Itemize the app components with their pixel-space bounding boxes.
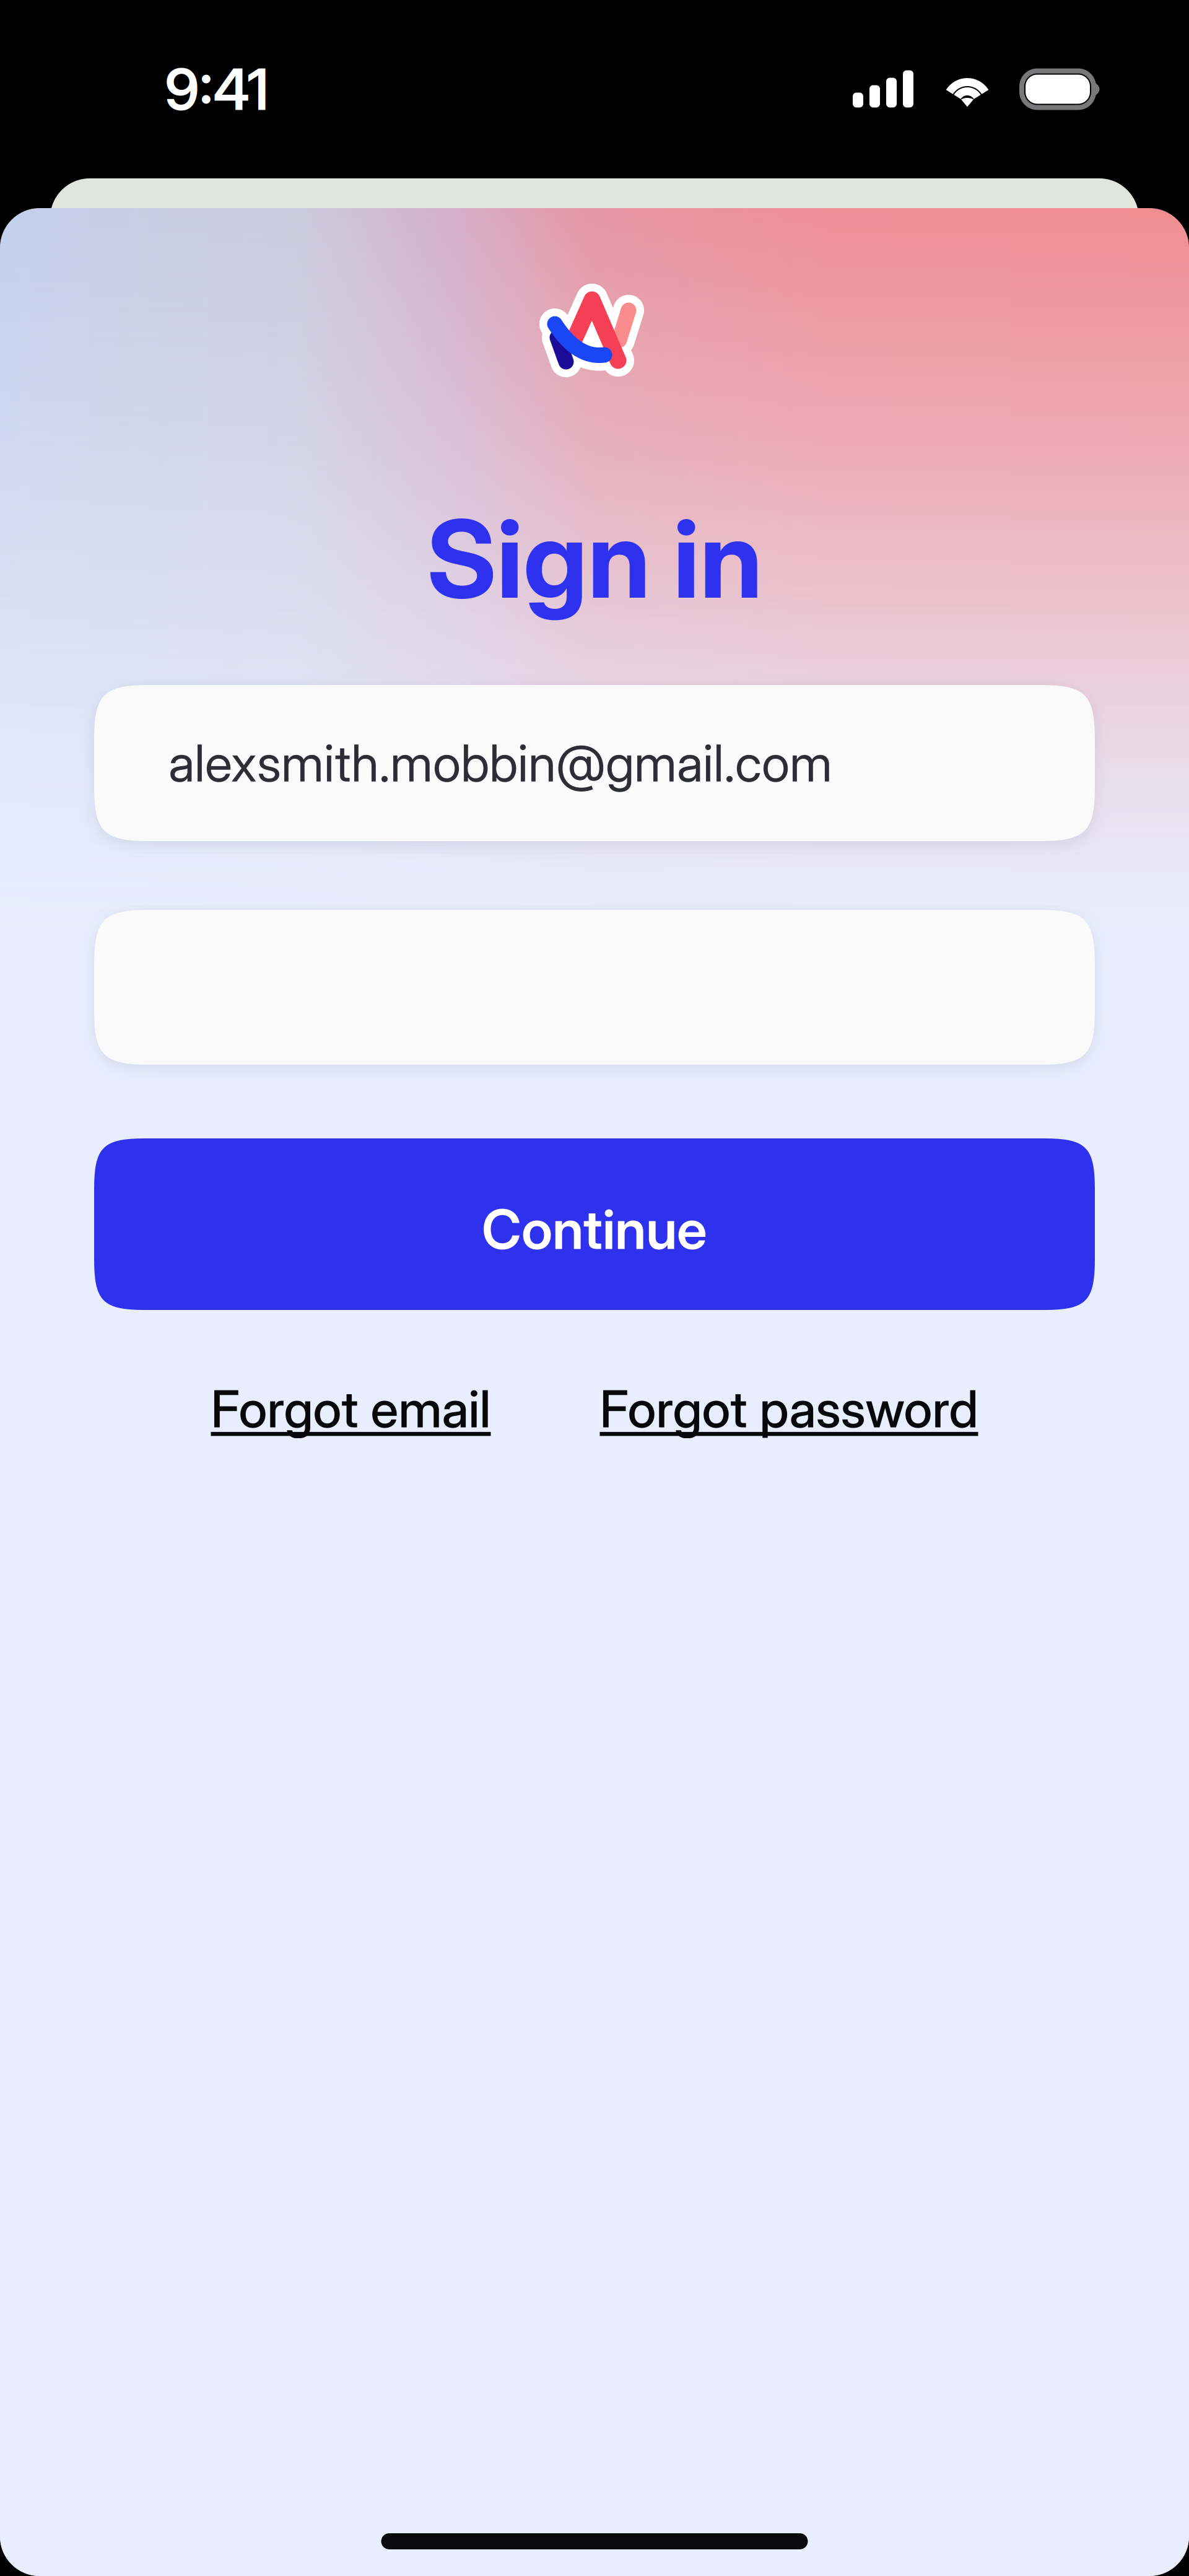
staticText: Sign in [427, 494, 762, 624]
button[interactable]: Continue [94, 1138, 1095, 1310]
staticText: 9:41 [165, 55, 269, 124]
button[interactable]: Forgot email [211, 1378, 491, 1440]
button[interactable]: Forgot password [600, 1378, 978, 1440]
staticText: alexsmith.mobbin@gmail.com [168, 732, 832, 794]
staticText: Continue [482, 1196, 707, 1262]
staticText: Forgot password [600, 1378, 978, 1440]
staticText: Forgot email [211, 1378, 491, 1440]
